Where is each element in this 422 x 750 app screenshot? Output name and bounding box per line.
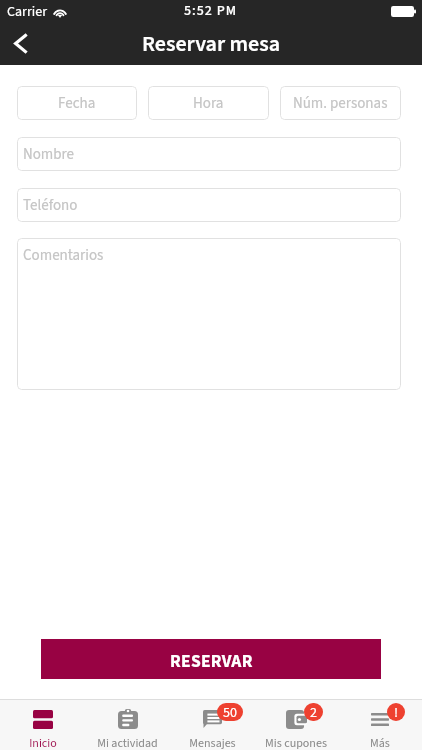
staticText: Inicio xyxy=(29,735,57,750)
button[interactable]: Comentarios xyxy=(17,238,401,390)
button[interactable]: Hora xyxy=(148,86,269,120)
staticText: 5:52 PM xyxy=(184,1,238,21)
staticText: Reservar mesa xyxy=(142,28,281,59)
staticText: Carrier xyxy=(7,2,48,22)
staticText: Más xyxy=(370,735,390,750)
staticText: Fecha xyxy=(58,93,96,114)
staticText: 2 xyxy=(310,703,317,721)
staticText: ! xyxy=(394,703,399,721)
button[interactable]: Fecha xyxy=(17,86,137,120)
button[interactable]: Nombre xyxy=(17,137,401,171)
staticText: Mis cupones xyxy=(265,735,327,750)
staticText: Hora xyxy=(193,93,224,114)
staticText: RESERVAR xyxy=(170,649,253,674)
button[interactable]: RESERVAR xyxy=(41,639,381,679)
staticText: Comentarios xyxy=(23,245,104,266)
staticText: Teléfono xyxy=(23,195,78,216)
button[interactable]: 50 xyxy=(170,700,254,750)
staticText: 50 xyxy=(223,703,237,721)
button[interactable]: Mi actividad xyxy=(85,700,170,750)
staticText: Nombre xyxy=(23,144,75,165)
staticText: Mi actividad xyxy=(97,735,158,750)
button[interactable]: Inicio xyxy=(0,700,85,750)
button[interactable]: Back xyxy=(0,22,42,65)
button[interactable]: ! xyxy=(338,700,422,750)
staticText: Núm. personas xyxy=(293,93,388,114)
button[interactable]: 2 xyxy=(254,700,338,750)
staticText: Mensajes xyxy=(189,735,236,750)
button[interactable]: Teléfono xyxy=(17,188,401,222)
button[interactable]: Núm. personas xyxy=(280,86,401,120)
